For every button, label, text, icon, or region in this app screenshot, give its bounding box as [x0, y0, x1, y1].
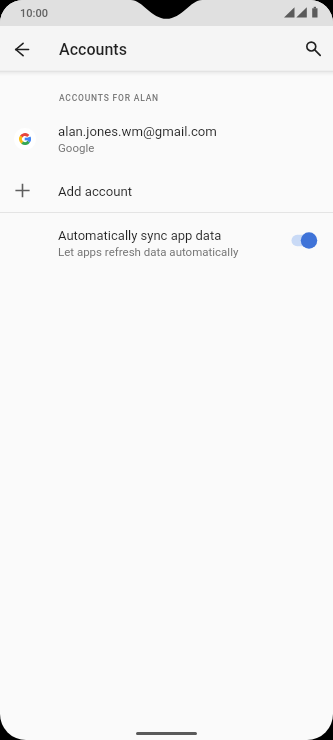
- button[interactable]: [0, 168, 333, 212]
- staticText: Automatically sync app data: [58, 228, 222, 243]
- staticText: Add account: [58, 184, 133, 199]
- staticText: 10:00: [20, 7, 48, 20]
- button[interactable]: Back: [4, 31, 40, 67]
- staticText: Accounts: [59, 40, 127, 59]
- staticText: Google: [58, 141, 95, 154]
- button[interactable]: Search: [295, 30, 331, 66]
- button[interactable]: [0, 213, 333, 268]
- button[interactable]: [0, 112, 333, 160]
- button[interactable]: Automatically sync app data toggle: [288, 229, 321, 252]
- staticText: Let apps refresh data automatically: [58, 245, 239, 258]
- staticText: alan.jones.wm@gmail.com: [58, 124, 217, 139]
- staticText: ACCOUNTS FOR ALAN: [59, 93, 159, 103]
